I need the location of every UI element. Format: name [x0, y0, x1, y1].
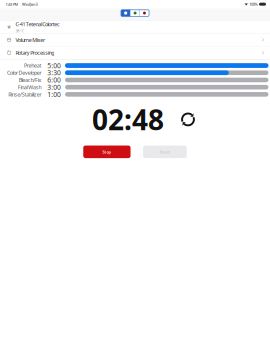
button[interactable]: Second agitation mode: [131, 10, 140, 16]
button[interactable]: Third agitation mode: [140, 10, 149, 16]
staticText: 1:00: [47, 90, 61, 99]
button[interactable]: Stop: [83, 145, 130, 158]
button[interactable]: Volume Mixer: [0, 34, 270, 46]
staticText: Preheat: [24, 62, 42, 69]
staticText: Bleach/Fix: [19, 76, 42, 83]
button[interactable]: First agitation mode: [121, 10, 130, 16]
staticText: Color Developer: [7, 69, 42, 76]
staticText: Wed Jan 3: [22, 1, 38, 7]
staticText: 38 °C: [15, 28, 25, 33]
staticText: Stop: [102, 149, 111, 154]
staticText: Rinse/Stabilizer: [8, 91, 41, 98]
staticText: 100%: [249, 1, 258, 7]
staticText: C-41 Tetenal Colortec: [15, 21, 60, 28]
button[interactable]: C-41 Tetenal Colortec: [0, 21, 270, 34]
staticText: Rotary Processing: [15, 49, 54, 56]
button[interactable]: Restart step: [180, 111, 196, 127]
staticText: Reset: [159, 149, 170, 154]
staticText: 5:00: [47, 61, 61, 70]
staticText: 3:00: [47, 83, 61, 92]
staticText: 6:00: [47, 75, 61, 84]
button[interactable]: Reset: [143, 145, 187, 158]
staticText: 3:30: [47, 68, 61, 77]
staticText: Volume Mixer: [15, 36, 45, 43]
staticText: 1:43 PM: [6, 1, 18, 7]
button[interactable]: Rotary Processing: [0, 46, 270, 59]
staticText: 02:48: [92, 101, 164, 138]
staticText: Final Wash: [18, 84, 42, 91]
